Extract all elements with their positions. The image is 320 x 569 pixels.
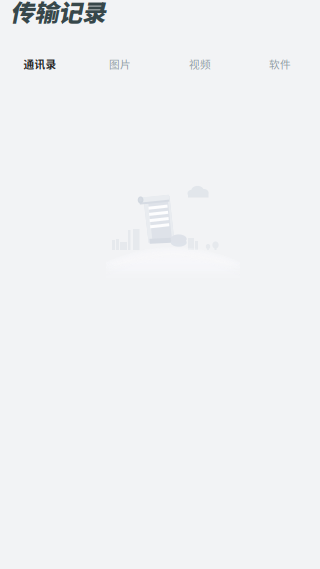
staticText: 通讯录 [23,56,56,71]
button[interactable]: 通讯录 [0,51,80,77]
staticText: 软件 [269,56,291,71]
staticText: 视频 [189,56,211,71]
button[interactable]: 软件 [240,51,320,77]
button[interactable]: 图片 [80,51,160,77]
button[interactable]: 视频 [160,51,240,77]
staticText: 传输记录 [10,0,106,29]
staticText: 图片 [109,56,131,71]
